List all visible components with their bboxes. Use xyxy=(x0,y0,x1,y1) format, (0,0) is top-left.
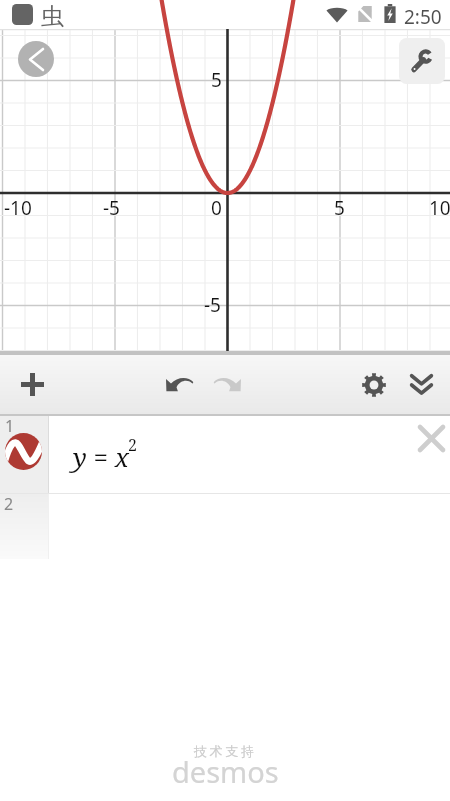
staticText: y = x xyxy=(73,439,129,474)
button[interactable]: Add expression xyxy=(8,355,56,414)
button[interactable]: Back xyxy=(18,41,54,77)
button[interactable]: Delete expression xyxy=(411,418,450,458)
staticText: 5 xyxy=(334,195,345,221)
staticText: -5 xyxy=(204,292,221,318)
staticText: -5 xyxy=(103,195,120,221)
button[interactable]: Collapse keypad xyxy=(397,355,445,414)
button[interactable]: Redo xyxy=(201,355,253,414)
button[interactable]: 2 xyxy=(0,494,450,559)
staticText: 2 xyxy=(4,493,14,515)
staticText: -10 xyxy=(4,195,32,221)
staticText: 2 xyxy=(128,434,137,456)
staticText: 10 xyxy=(429,195,450,221)
staticText: 1 xyxy=(5,415,15,437)
staticText: desmos xyxy=(172,752,279,791)
staticText: 虫 xyxy=(41,2,64,31)
button[interactable]: 1 xyxy=(0,416,450,493)
staticText: 技术支持 xyxy=(194,743,257,759)
staticText: 5 xyxy=(211,67,222,93)
staticText: 2:50 xyxy=(404,4,442,30)
button[interactable]: Graph settings xyxy=(399,38,445,84)
staticText: 0 xyxy=(211,195,222,221)
button[interactable]: Settings xyxy=(350,355,398,414)
button[interactable]: Undo xyxy=(153,355,205,414)
